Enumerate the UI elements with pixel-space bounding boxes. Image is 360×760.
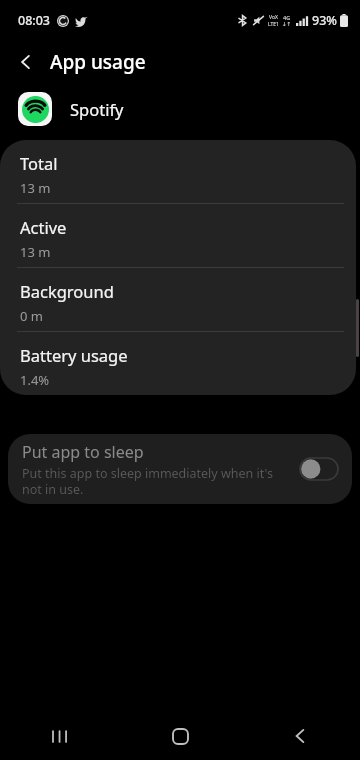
button[interactable]: Back xyxy=(240,712,360,760)
staticText: Put this app to sleep immediately when i… xyxy=(22,465,294,497)
button[interactable]: Put app to sleep xyxy=(8,434,352,504)
button[interactable]: Total xyxy=(0,140,356,203)
staticText: 4G xyxy=(283,14,291,21)
staticText: 13 m xyxy=(20,243,51,261)
button[interactable]: Put app to sleep toggle xyxy=(300,458,338,480)
button[interactable]: Active xyxy=(0,204,356,267)
staticText: App usage xyxy=(50,49,146,75)
staticText: ↓↑ xyxy=(282,21,292,27)
button[interactable]: Home xyxy=(120,712,240,760)
staticText: VoX xyxy=(269,14,278,21)
button[interactable]: Recents xyxy=(0,712,120,760)
staticText: Battery usage xyxy=(20,344,128,366)
staticText: Active xyxy=(20,216,67,238)
staticText: Total xyxy=(20,152,58,174)
staticText: LTE1 xyxy=(268,21,279,28)
staticText: 93% xyxy=(312,12,337,29)
staticText: 08:03 xyxy=(18,12,51,29)
staticText: 13 m xyxy=(20,179,51,197)
button[interactable]: Spotify xyxy=(0,84,360,134)
staticText: Background xyxy=(20,280,114,302)
staticText: Spotify xyxy=(70,98,124,120)
staticText: 1.4% xyxy=(20,371,50,389)
staticText: Put app to sleep xyxy=(22,441,144,463)
button[interactable]: Back xyxy=(8,44,44,80)
staticText: 0 m xyxy=(20,307,43,325)
button[interactable]: Battery usage xyxy=(0,332,356,395)
button[interactable]: Background xyxy=(0,268,356,331)
